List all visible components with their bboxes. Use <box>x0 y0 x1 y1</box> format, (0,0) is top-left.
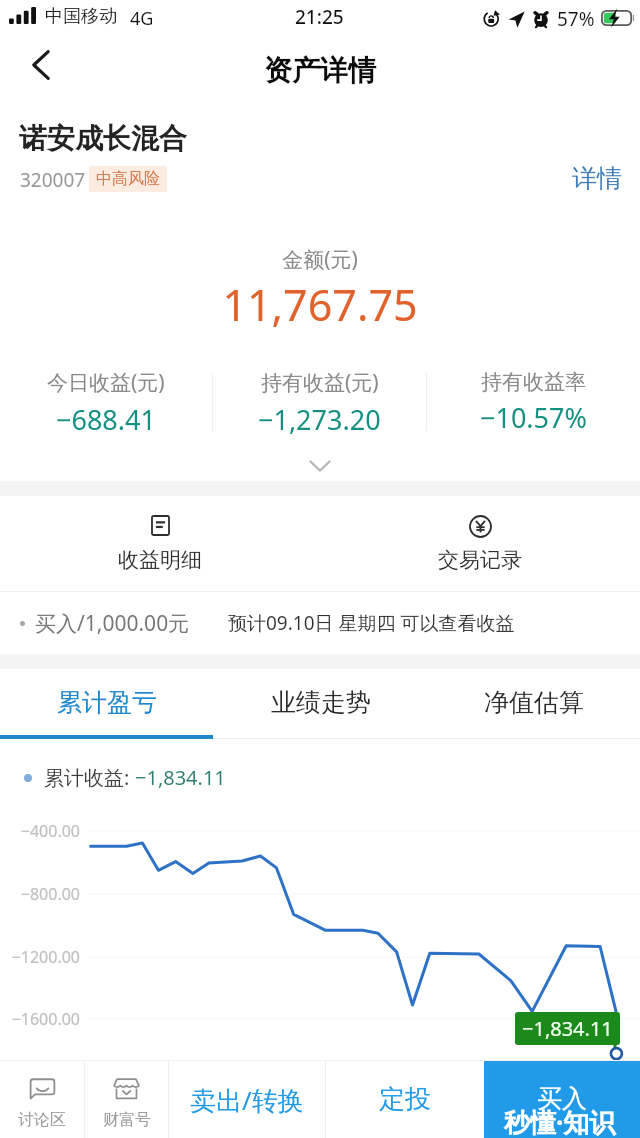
staticText: 中高风险 <box>96 169 160 189</box>
staticText: 11,767.75 <box>0 275 640 334</box>
staticText: 57% <box>557 6 595 32</box>
staticText: 预计09.10日 星期四 可以查看收益 <box>228 610 515 636</box>
staticText: 持有收益率 <box>481 369 586 395</box>
button[interactable]: 净值估算 <box>427 669 640 735</box>
staticText: 累计盈亏 <box>57 687 157 718</box>
button[interactable]: 交易记录 <box>320 496 640 591</box>
staticText: 收益明细 <box>118 547 202 573</box>
staticText: 定投 <box>379 1083 431 1116</box>
staticText: 秒懂·知识 <box>504 1104 616 1138</box>
staticText: −1,834.11 <box>135 764 226 791</box>
button[interactable]: 讨论区 <box>0 1061 84 1138</box>
button[interactable]: 业绩走势 <box>214 669 427 735</box>
button[interactable]: 买入 <box>484 1061 640 1138</box>
staticText: 讨论区 <box>18 1110 66 1130</box>
staticText: −10.57% <box>480 399 587 436</box>
staticText: −1600.00 <box>0 1008 80 1030</box>
staticText: 持有收益(元) <box>261 368 379 397</box>
staticText: 买入/1,000.00元 <box>35 609 190 638</box>
staticText: 今日收益(元) <box>47 368 165 397</box>
button[interactable]: 财富号 <box>85 1061 168 1138</box>
staticText: −688.41 <box>56 401 156 436</box>
staticText: 中国移动 <box>45 5 117 28</box>
staticText: 业绩走势 <box>271 687 371 718</box>
staticText: 累计收益: <box>44 764 135 791</box>
staticText: 净值估算 <box>484 687 584 718</box>
staticText: 买入 <box>537 1083 587 1114</box>
button[interactable]: 累计盈亏 <box>0 669 214 735</box>
staticText: −1,834.11 <box>522 1015 613 1042</box>
staticText: 资产详情 <box>264 53 376 88</box>
button[interactable]: Back <box>0 40 81 90</box>
staticText: −1,273.20 <box>258 401 381 436</box>
staticText: 320007 <box>20 167 86 193</box>
staticText: 交易记录 <box>438 547 522 573</box>
staticText: −400.00 <box>0 820 80 842</box>
button[interactable]: 收益明细 <box>0 496 320 591</box>
staticText: 21:25 <box>295 4 344 30</box>
button[interactable]: 定投 <box>326 1061 484 1138</box>
staticText: 详情 <box>572 163 622 194</box>
staticText: 4G <box>130 6 154 31</box>
button[interactable]: 详情 <box>552 155 640 202</box>
staticText: −1200.00 <box>0 946 80 968</box>
staticText: 诺安成长混合 <box>19 121 187 156</box>
staticText: −800.00 <box>0 883 80 905</box>
staticText: 财富号 <box>103 1110 151 1130</box>
button[interactable]: 卖出/转换 <box>169 1061 325 1138</box>
staticText: 金额(元) <box>0 245 640 274</box>
staticText: 卖出/转换 <box>190 1082 304 1118</box>
